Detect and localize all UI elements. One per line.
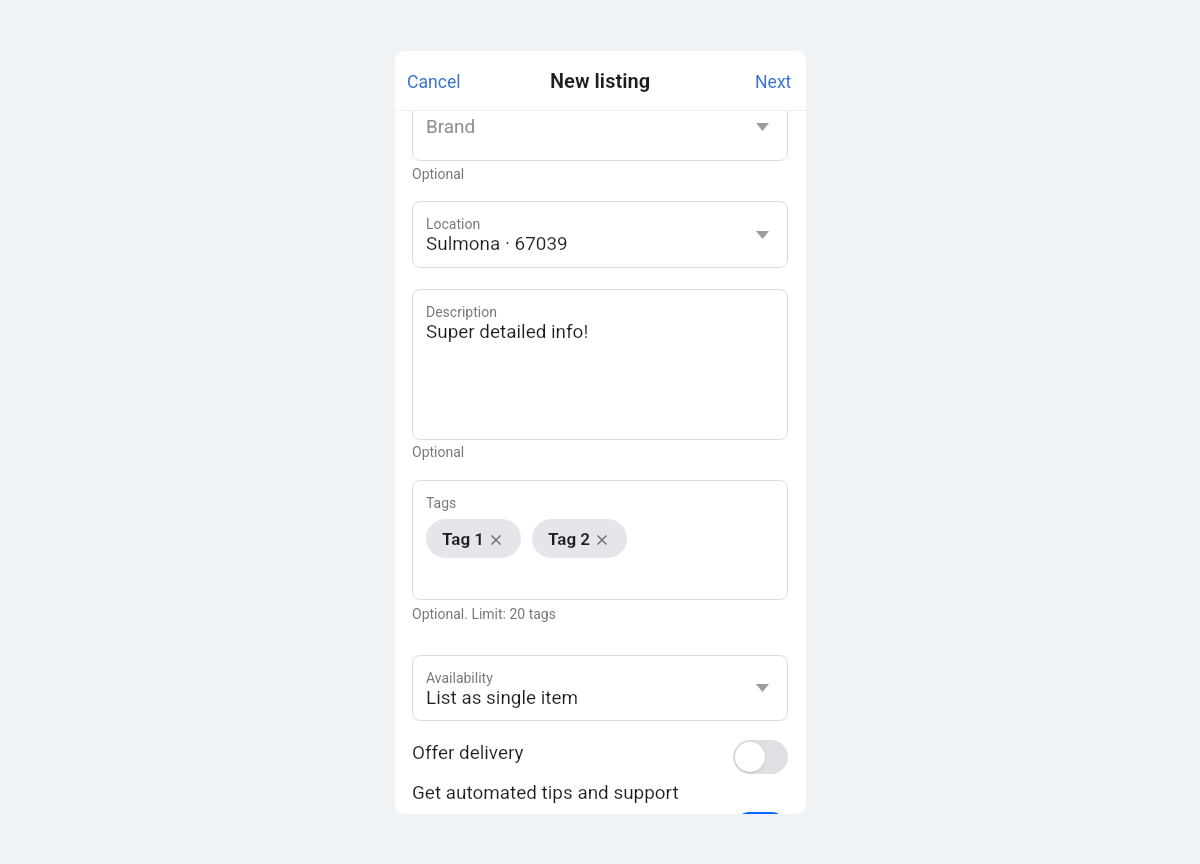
- button[interactable]: Tags: [412, 480, 788, 600]
- staticText: Tag 2: [548, 529, 591, 549]
- staticText: Offer delivery: [412, 741, 524, 763]
- button[interactable]: Brand: [412, 111, 788, 161]
- button[interactable]: Description: [412, 289, 788, 440]
- staticText: Optional: [412, 444, 465, 460]
- button[interactable]: Get automated tips and support: [412, 770, 788, 814]
- button[interactable]: Cancel: [395, 63, 473, 102]
- button[interactable]: Location: [412, 201, 788, 268]
- staticText: List as single item: [426, 686, 579, 708]
- staticText: Brand: [426, 115, 476, 137]
- staticText: Availability: [426, 670, 493, 686]
- staticText: Optional. Limit: 20 tags: [412, 606, 556, 622]
- staticText: Next: [755, 72, 792, 93]
- staticText: New listing: [550, 69, 651, 92]
- staticText: Super detailed info!: [426, 320, 589, 342]
- staticText: Location: [426, 216, 481, 232]
- other: Remove Tag 2: [598, 536, 606, 544]
- staticText: Cancel: [407, 72, 461, 93]
- button[interactable]: Tag 2: [532, 519, 627, 558]
- staticText: Tags: [426, 495, 457, 511]
- button[interactable]: Get automated tips and support: [733, 812, 788, 814]
- other: Remove Tag 1: [492, 536, 500, 544]
- staticText: Sulmona · 67039: [426, 232, 568, 254]
- staticText: Description: [426, 304, 497, 320]
- staticText: Optional: [412, 166, 465, 182]
- staticText: Get automated tips and support: [412, 781, 679, 803]
- button[interactable]: Offer delivery: [733, 740, 788, 774]
- button[interactable]: Availability: [412, 655, 788, 721]
- staticText: Tag 1: [442, 529, 485, 549]
- button[interactable]: Tag 1: [426, 519, 521, 558]
- button[interactable]: Offer delivery: [412, 730, 788, 774]
- button[interactable]: Next: [741, 63, 806, 102]
